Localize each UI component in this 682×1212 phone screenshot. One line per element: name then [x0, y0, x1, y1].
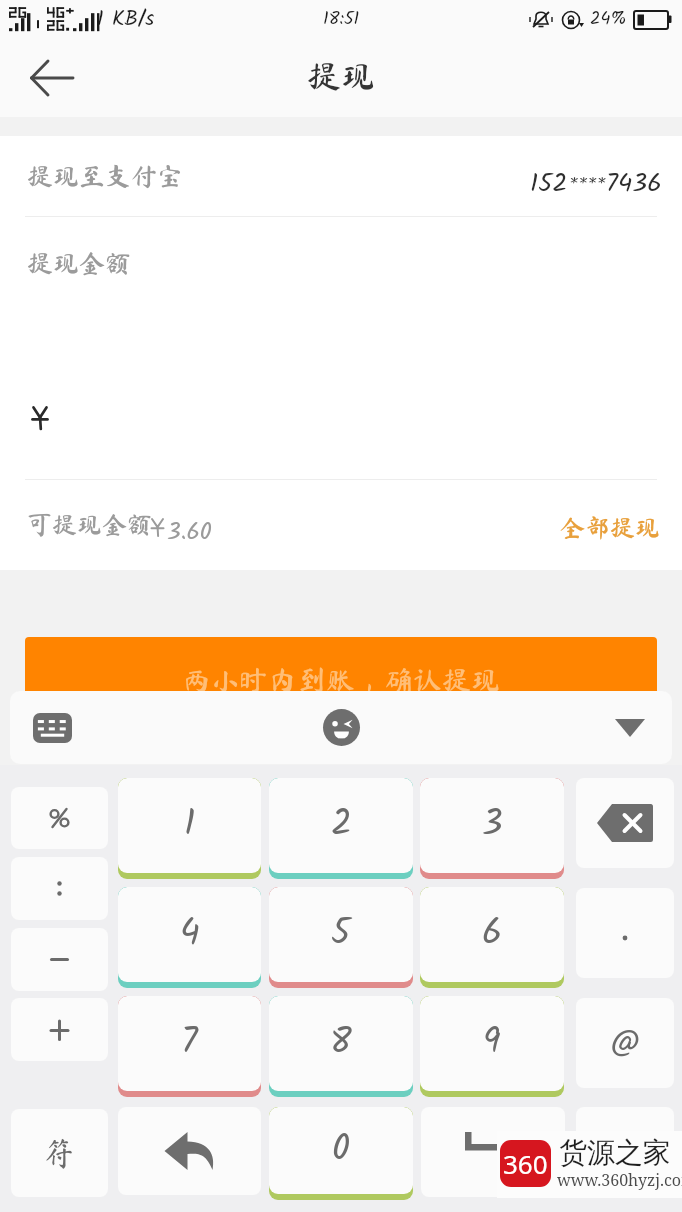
button[interactable]: 全部提现 — [560, 515, 661, 540]
button[interactable]: 1 — [118, 778, 261, 879]
staticText: 360 — [503, 1146, 548, 1181]
button[interactable]: Undo — [118, 1107, 261, 1195]
staticText: 1 — [184, 797, 196, 854]
button[interactable]: More — [576, 1107, 674, 1195]
button[interactable]: 0 — [269, 1107, 413, 1200]
staticText: 5 — [331, 906, 351, 963]
staticText: 可提现金额 — [27, 512, 153, 537]
button[interactable]: Backspace — [576, 778, 674, 868]
button[interactable]: 4 — [118, 887, 261, 988]
button[interactable]: 8 — [269, 996, 413, 1097]
staticText: 6 — [482, 906, 503, 963]
staticText: 3 — [482, 797, 503, 854]
button[interactable]: Percent — [11, 787, 108, 849]
button[interactable]: 3 — [420, 778, 564, 879]
staticText: 7 — [181, 1015, 198, 1072]
staticText: 两小时内到账，确认提现 — [181, 665, 501, 694]
button[interactable]: 7 — [118, 996, 261, 1097]
staticText: 24% — [590, 5, 627, 34]
staticText: www.360hyzj.com — [557, 1169, 682, 1191]
staticText: 0 — [332, 1122, 350, 1179]
button[interactable]: 5 — [269, 887, 413, 988]
staticText: 提现金额 — [27, 250, 132, 276]
staticText: 8 — [330, 1015, 352, 1072]
button[interactable]: Dot — [576, 888, 674, 978]
staticText: 2 — [331, 797, 352, 854]
staticText: **** — [568, 169, 606, 210]
button[interactable]: Switch keyboard — [14, 691, 90, 764]
staticText: 符 — [43, 1137, 76, 1169]
staticText: 1 KB/s — [97, 3, 155, 36]
button[interactable]: 6 — [420, 887, 564, 988]
button[interactable]: Minus — [11, 928, 108, 991]
button[interactable]: @ — [576, 998, 674, 1088]
staticText: 提现 — [307, 59, 375, 93]
button[interactable]: 2 — [269, 778, 413, 879]
staticText: 货源之家 — [559, 1135, 671, 1170]
staticText: 3.60 — [167, 513, 212, 551]
staticText: @ — [611, 1019, 640, 1067]
button[interactable]: Emoji — [311, 691, 371, 764]
staticText: 7436 — [606, 163, 662, 204]
staticText: 提现至支付宝 — [27, 163, 184, 189]
button[interactable]: 9 — [420, 996, 564, 1097]
staticText: 4 — [180, 906, 200, 963]
staticText: 18:51 — [323, 5, 360, 34]
button[interactable]: Plus — [11, 998, 108, 1061]
staticText: 152 — [530, 163, 568, 204]
button[interactable]: Enter — [421, 1107, 565, 1197]
button[interactable]: Back — [0, 39, 103, 117]
button[interactable]: 两小时内到账，确认提现 — [25, 637, 657, 721]
button[interactable]: Hide keyboard — [594, 691, 666, 764]
button[interactable]: 符 — [11, 1109, 108, 1197]
staticText: 9 — [483, 1015, 501, 1072]
button[interactable]: Colon — [11, 857, 108, 920]
